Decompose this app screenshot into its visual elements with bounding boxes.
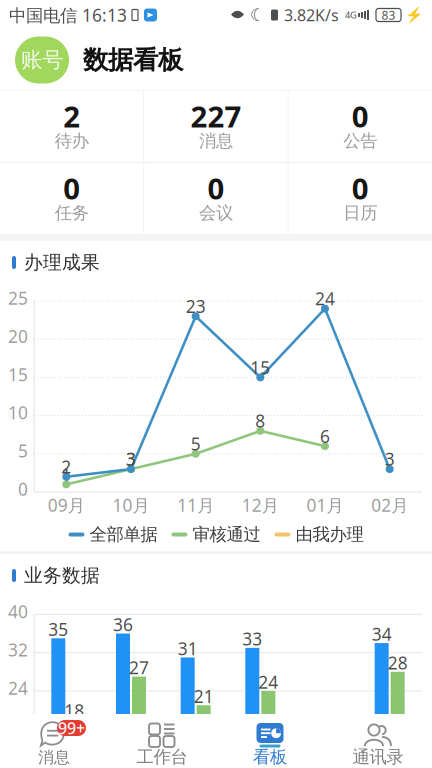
staticText: 34 xyxy=(372,623,392,646)
staticText: 由我办理 xyxy=(295,524,363,545)
button[interactable]: 227 xyxy=(144,91,288,162)
staticText: 33 xyxy=(242,627,262,650)
staticText: 0 xyxy=(207,168,224,207)
staticText: 12月 xyxy=(242,493,279,516)
staticText: 4G xyxy=(345,9,357,21)
staticText: 40 xyxy=(8,600,28,623)
staticText: 15 xyxy=(8,363,28,386)
staticText: 3 xyxy=(126,448,136,471)
staticText: 1 xyxy=(61,463,71,486)
staticText: 3 xyxy=(126,448,136,471)
staticText: 业务数据 xyxy=(24,564,100,587)
staticText: 27 xyxy=(129,656,149,679)
staticText: 15 xyxy=(250,356,270,379)
staticText: 0 xyxy=(18,477,28,500)
staticText: 任务 xyxy=(55,202,89,224)
staticText: 6 xyxy=(320,425,330,448)
button[interactable]: 账号 xyxy=(15,36,69,83)
staticText: 看板 xyxy=(253,746,287,768)
staticText: 全部单据 xyxy=(89,524,157,545)
staticText: 25 xyxy=(8,286,28,309)
staticText: 09月 xyxy=(48,493,85,516)
staticText: 02月 xyxy=(371,493,408,516)
staticText: 待办 xyxy=(55,130,89,152)
staticText: 20 xyxy=(8,325,28,348)
staticText: 3.82K/s xyxy=(284,4,339,26)
staticText: 18 xyxy=(64,699,84,722)
staticText: 11月 xyxy=(177,493,214,516)
staticText: 5 xyxy=(18,439,28,462)
staticText: 10 xyxy=(8,401,28,424)
staticText: 21 xyxy=(194,685,214,708)
staticText: 10月 xyxy=(112,493,149,516)
staticText: 24 xyxy=(8,676,28,699)
staticText: 办理成果 xyxy=(24,251,100,274)
staticText: 通讯录 xyxy=(352,746,403,768)
staticText: 28 xyxy=(388,651,408,674)
button[interactable]: 通讯录 xyxy=(324,714,432,768)
staticText: 31 xyxy=(178,637,198,660)
staticText: 0 xyxy=(352,168,369,207)
staticText: 24 xyxy=(315,287,335,310)
staticText: ☾ xyxy=(250,5,266,25)
button[interactable]: 0 xyxy=(289,91,432,162)
staticText: 公告 xyxy=(343,130,377,152)
button[interactable]: 99+ xyxy=(0,714,108,768)
staticText: 0 xyxy=(63,168,80,207)
staticText: 83 xyxy=(381,7,395,23)
button[interactable]: 0 xyxy=(289,163,432,234)
staticText: 工作台 xyxy=(136,746,187,768)
staticText: 24 xyxy=(258,670,278,693)
staticText: 日历 xyxy=(343,202,377,224)
staticText: 2 xyxy=(63,96,80,135)
staticText: 3 xyxy=(385,448,395,471)
staticText: 23 xyxy=(186,295,206,318)
staticText: 审核通过 xyxy=(192,524,260,545)
staticText: 2 xyxy=(61,455,71,478)
staticText: 账号 xyxy=(21,47,63,73)
button[interactable]: 0 xyxy=(0,163,143,234)
staticText: 0 xyxy=(352,96,369,135)
staticText: 35 xyxy=(48,618,68,641)
button[interactable]: 工作台 xyxy=(108,714,216,768)
staticText: 8 xyxy=(255,409,265,432)
staticText: 5 xyxy=(191,432,201,455)
staticText: 01月 xyxy=(306,493,343,516)
staticText: 227 xyxy=(190,96,241,135)
staticText: 数据看板 xyxy=(83,44,183,75)
staticText: 99+ xyxy=(58,717,85,739)
staticText: 36 xyxy=(113,613,133,636)
staticText: 消息 xyxy=(38,748,70,767)
staticText: 消息 xyxy=(199,130,233,152)
button[interactable]: 2 xyxy=(0,91,143,162)
staticText: 会议 xyxy=(199,202,233,224)
staticText: 32 xyxy=(8,638,28,661)
staticText: ⚡ xyxy=(405,7,423,23)
staticText: 中国电信 16:13 xyxy=(9,3,127,26)
button[interactable]: 0 xyxy=(144,163,288,234)
button[interactable]: 看板 xyxy=(216,714,324,768)
